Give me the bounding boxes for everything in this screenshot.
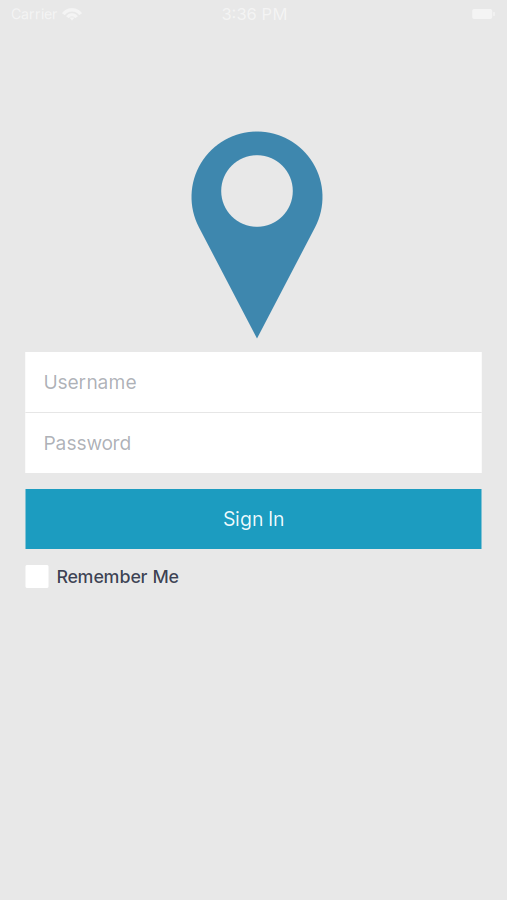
staticText: Username	[43, 370, 136, 394]
button[interactable]: Remember Me	[25, 565, 481, 588]
button[interactable]: Password	[25, 413, 481, 473]
button[interactable]: Username	[25, 352, 481, 412]
staticText: Remember Me	[56, 566, 178, 587]
staticText: Password	[43, 431, 131, 455]
button[interactable]: Sign In	[25, 489, 481, 549]
staticText: Carrier	[11, 5, 57, 22]
staticText: Sign In	[223, 507, 284, 531]
staticText: 3:36 PM	[221, 4, 287, 24]
